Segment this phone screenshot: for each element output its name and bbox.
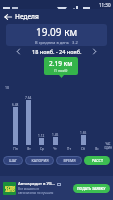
button[interactable]: Next week (90, 47, 99, 56)
button[interactable]: КАЛОРИЯ (25, 156, 54, 165)
staticText: 2.19 км (49, 59, 73, 68)
button[interactable]: Back (0, 9, 15, 24)
button[interactable]: 1.12 (35, 134, 48, 145)
staticText: Пт (67, 147, 71, 151)
staticText: ПОДАТЬ ЗАЯВКУ (77, 186, 106, 191)
button[interactable]: РАССТ (84, 156, 110, 165)
staticText: Пн (13, 147, 18, 151)
staticText: 10 (5, 85, 10, 90)
staticText: КАЛОРИЯ (31, 158, 49, 163)
button[interactable]: КУПИ АВТО (3, 176, 110, 200)
staticText: Чт (53, 147, 57, 151)
button[interactable]: 19.09 км (6, 24, 107, 46)
button[interactable]: 1.65 (76, 131, 90, 145)
staticText: В среднем в день 3.2 (35, 40, 78, 45)
staticText: РАССТ (92, 158, 103, 163)
staticText: Сб (81, 147, 85, 151)
staticText: 1.12 (38, 134, 45, 138)
staticText: Вт (27, 147, 31, 151)
staticText: КУПИ АВТО (5, 185, 15, 193)
button[interactable]: ПОДАТЬ ЗАЯВКУ (77, 184, 106, 193)
staticText: Автокредит в УБ... (18, 181, 56, 187)
button[interactable]: 1.45 (48, 133, 62, 145)
staticText: (1 нояб) (54, 68, 68, 73)
staticText: Вс (95, 147, 99, 151)
button[interactable]: 2.19 км (49, 59, 73, 73)
button[interactable]: 6.48 (9, 103, 22, 145)
button[interactable]: Previous week (14, 47, 23, 56)
staticText: 7.64 (25, 96, 32, 100)
staticText: Ср (40, 147, 44, 151)
button[interactable]: ШАГ (3, 156, 23, 165)
button[interactable]: 7.64 (22, 96, 35, 145)
staticText: ШАГ (9, 158, 17, 163)
button[interactable]: ВРЕМЯ (56, 156, 82, 165)
staticText: 18 нояб. - 24 нояб. (32, 48, 82, 55)
staticText: 6.48 (12, 103, 19, 107)
staticText: ЧАС ОДИН (104, 142, 112, 150)
staticText: Все машины в автосалонах по лучшим (18, 187, 54, 195)
staticText: ВРЕМЯ (63, 158, 76, 163)
staticText: 1.45 (52, 133, 59, 137)
staticText: 1.65 (80, 131, 87, 135)
staticText: 19.09 км (36, 25, 78, 39)
staticText: 11:30 (99, 2, 111, 8)
staticText: Неделя (15, 12, 39, 21)
